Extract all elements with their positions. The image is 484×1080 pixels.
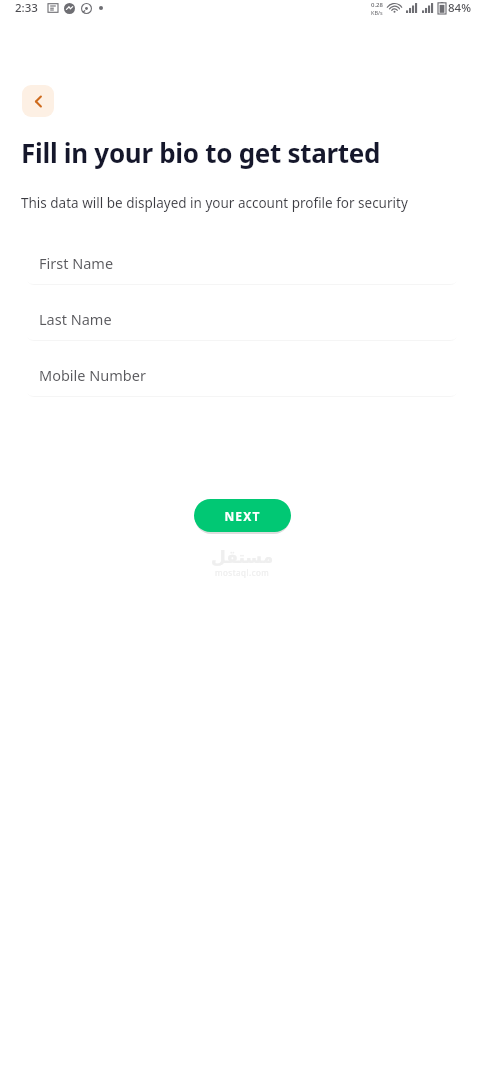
staticText: مستقل xyxy=(211,547,274,567)
button[interactable]: First Name xyxy=(25,241,459,284)
staticText: NEXT xyxy=(224,508,261,524)
staticText: Fill in your bio to get started xyxy=(21,135,381,170)
staticText: 2:33 xyxy=(15,0,38,16)
button[interactable]: Mobile Number xyxy=(25,353,459,396)
staticText: 84% xyxy=(448,0,471,16)
staticText: Last Name xyxy=(39,309,112,329)
button[interactable]: Last Name xyxy=(25,297,459,340)
staticText: mostaql.com xyxy=(215,567,270,578)
staticText: KB/s xyxy=(371,9,383,16)
button[interactable]: Back xyxy=(22,85,54,117)
staticText: 0.28 xyxy=(371,1,383,9)
button[interactable]: NEXT xyxy=(194,499,291,532)
staticText: Mobile Number xyxy=(39,365,146,385)
staticText: This data will be displayed in your acco… xyxy=(21,194,408,212)
staticText: First Name xyxy=(39,253,114,273)
